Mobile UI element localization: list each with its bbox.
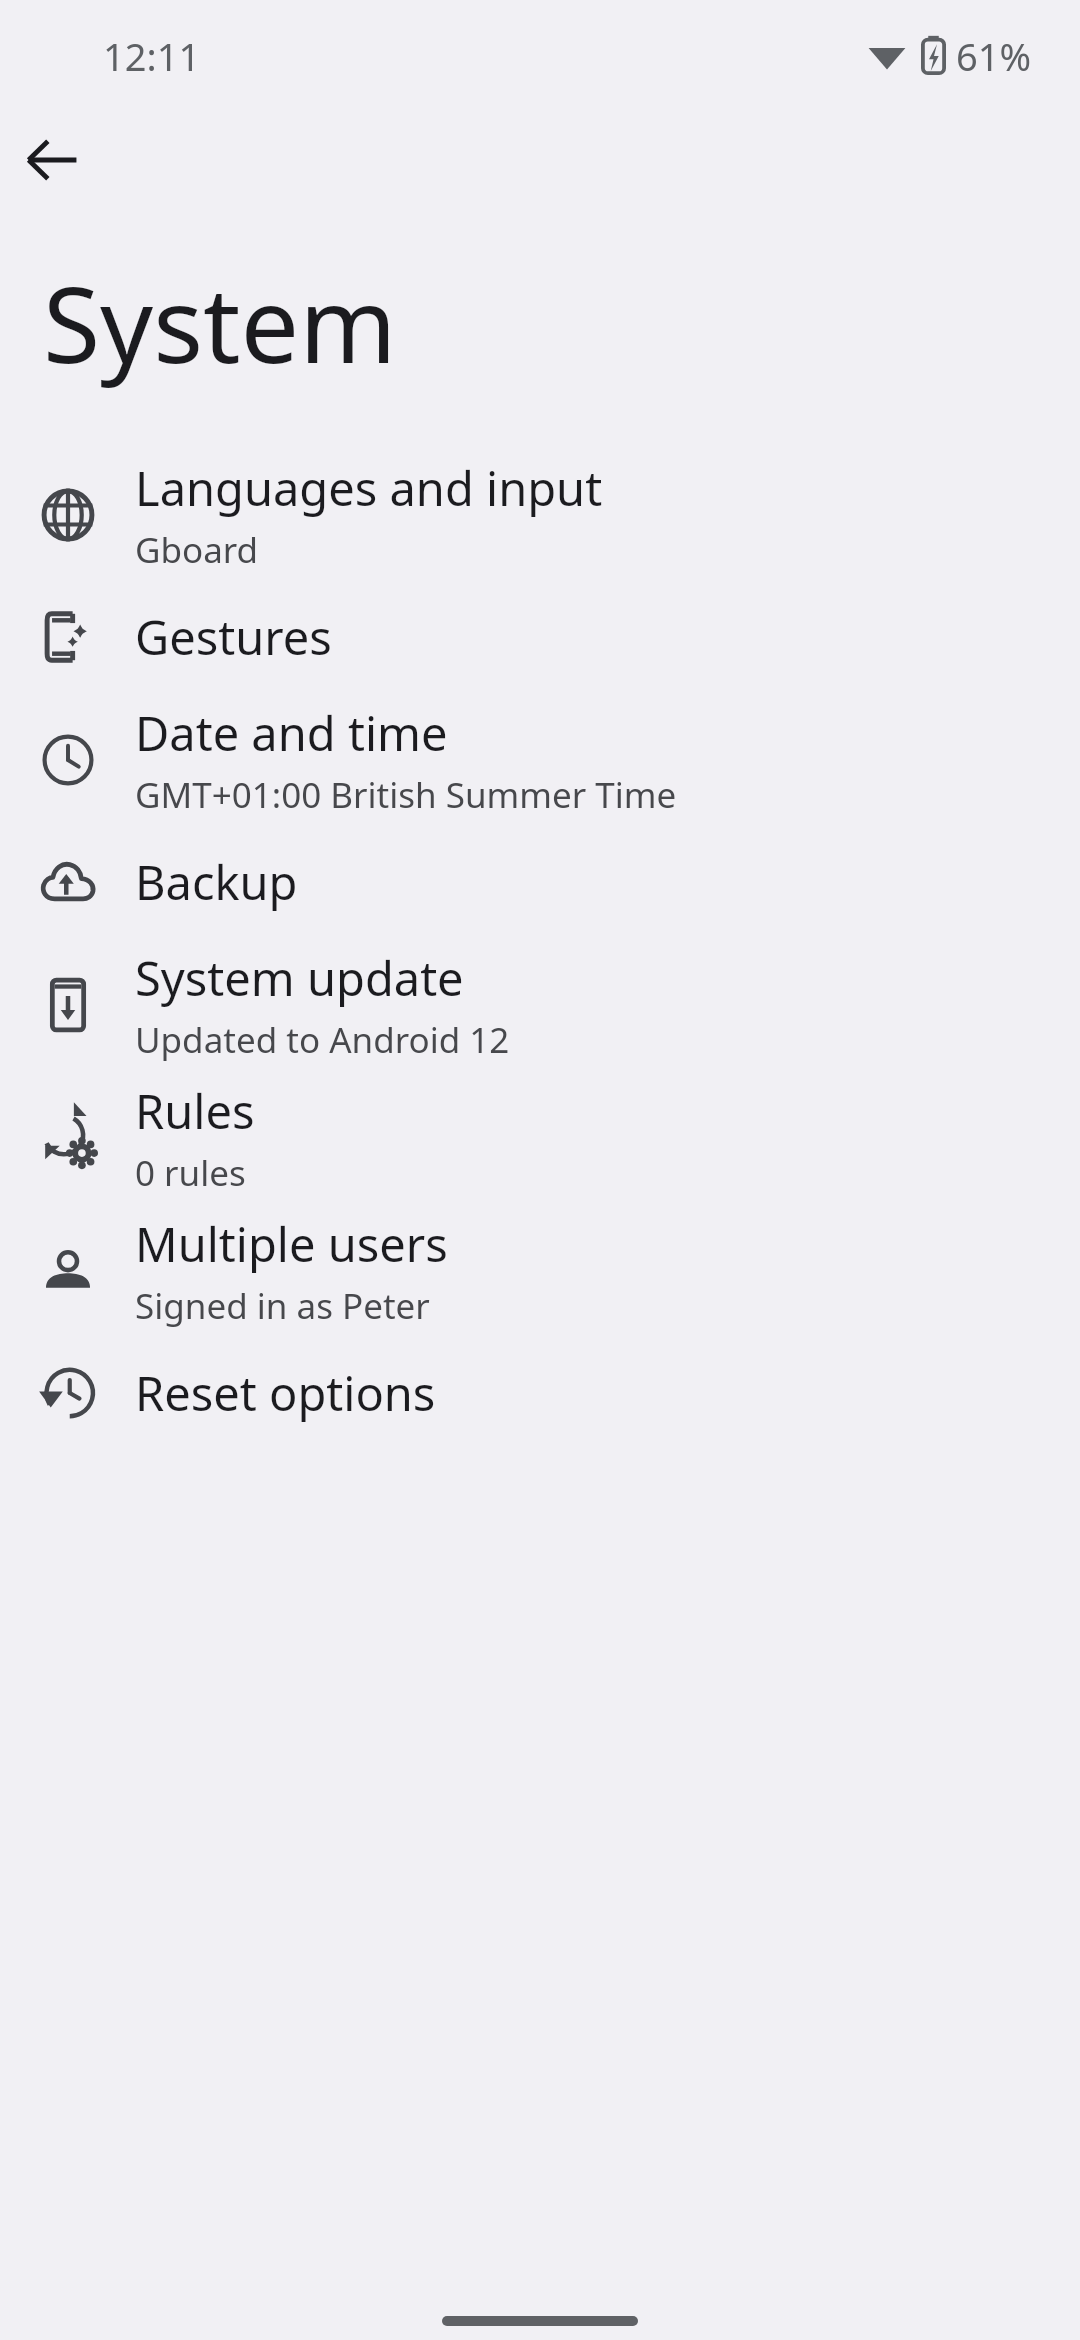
staticText: Gestures <box>135 605 332 669</box>
staticText: Updated to Android 12 <box>135 1016 510 1064</box>
button[interactable]: Gestures <box>0 581 1080 693</box>
button[interactable]: Reset options <box>0 1337 1080 1449</box>
staticText: 12:11 <box>103 30 201 82</box>
staticText: GMT+01:00 British Summer Time <box>135 771 677 819</box>
staticText: Multiple users <box>135 1212 448 1276</box>
button[interactable]: Rules <box>0 1071 1080 1204</box>
button[interactable]: Back <box>14 122 90 198</box>
staticText: Rules <box>135 1079 255 1143</box>
staticText: System update <box>135 946 464 1010</box>
button[interactable]: Multiple users <box>0 1204 1080 1337</box>
button[interactable]: Date and time <box>0 693 1080 826</box>
staticText: Signed in as Peter <box>135 1282 430 1330</box>
button[interactable]: System update <box>0 938 1080 1071</box>
staticText: Reset options <box>135 1361 436 1425</box>
button[interactable]: Backup <box>0 826 1080 938</box>
staticText: Backup <box>135 850 298 914</box>
button[interactable]: Languages and input <box>0 448 1080 581</box>
staticText: 61% <box>956 30 1032 82</box>
staticText: System <box>43 252 397 394</box>
staticText: Gboard <box>135 526 259 574</box>
staticText: Languages and input <box>135 456 603 520</box>
staticText: Date and time <box>135 701 448 765</box>
staticText: 0 rules <box>135 1149 246 1197</box>
